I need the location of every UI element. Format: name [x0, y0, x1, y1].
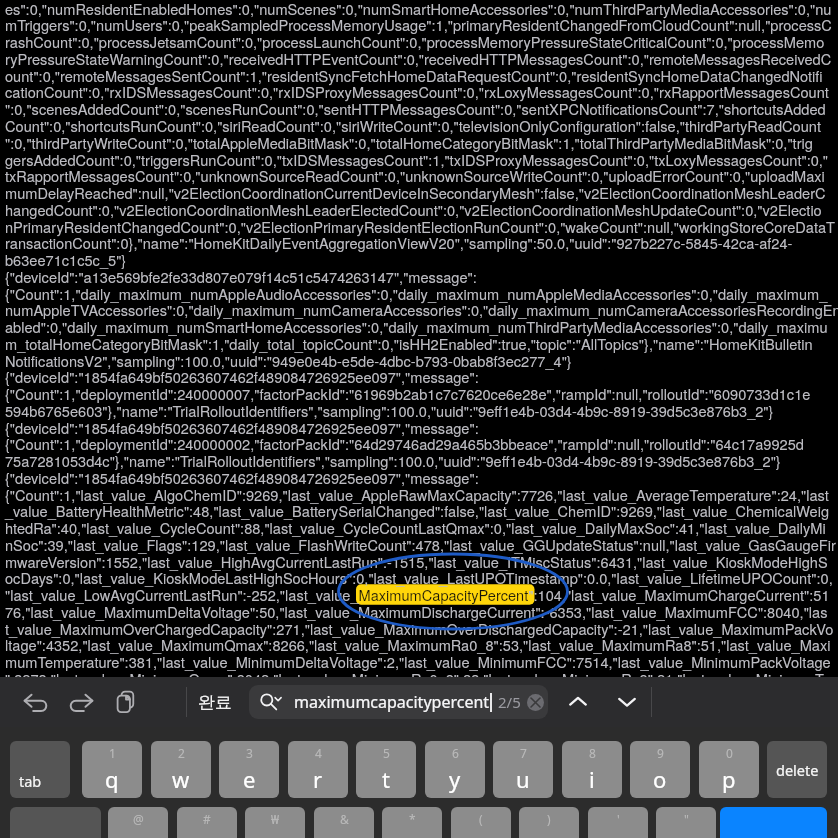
button[interactable]: Previous match: [559, 683, 597, 721]
staticText: ryPressureStateWarningCount":0,"received…: [5, 48, 832, 69]
button[interactable]: 6: [425, 741, 485, 798]
button[interactable]: ₩: [245, 807, 305, 838]
staticText: t: [382, 764, 390, 794]
staticText: e: [243, 764, 256, 794]
staticText: u: [516, 764, 530, 794]
staticText: 2/5: [498, 692, 521, 712]
staticText: 2: [178, 745, 185, 761]
staticText: 6: [452, 745, 459, 761]
button[interactable]: Redo: [62, 683, 100, 721]
staticText: *: [409, 811, 416, 827]
staticText: gersAddedCount":0,"triggersRunCount":0,"…: [5, 149, 829, 170]
staticText: b63ee71c1c5c_5"}: [5, 249, 127, 270]
staticText: 1: [109, 745, 116, 761]
button[interactable]: delete: [767, 741, 827, 798]
staticText: m_totalHomeCategoryBitMask":1,"daily_tot…: [5, 333, 813, 354]
staticText: 9: [657, 745, 664, 761]
button[interactable]: 9: [630, 741, 690, 798]
button[interactable]: Next match: [608, 683, 646, 721]
staticText: 0: [726, 745, 733, 761]
staticText: maximumcapacitypercent: [294, 691, 490, 713]
staticText: {"deviceId":"1854fa649bf50263607462f4890…: [5, 366, 479, 387]
staticText: ): [547, 811, 551, 827]
staticText: mumTemperature":381,"last_value_MinimumD…: [5, 651, 831, 672]
staticText: 4: [315, 745, 322, 761]
button[interactable]: 8: [562, 741, 622, 798]
staticText: ":0,"scenesAddedCount":0,"scenesRunCount…: [5, 98, 826, 119]
staticText: delete: [776, 760, 819, 780]
staticText: {"Count":1,"deploymentId":240000007,"fac…: [5, 383, 811, 404]
staticText: o: [653, 764, 667, 794]
staticText: (: [479, 811, 483, 827]
staticText: _value_BatteryHealthMetric":48,"last_val…: [5, 500, 830, 521]
staticText: nSoc":39,"last_value_Flags":129,"last_va…: [5, 534, 836, 555]
button[interactable]: ": [656, 807, 716, 838]
button[interactable]: 7: [493, 741, 553, 798]
staticText: mTriggers":0,"numUsers":0,"peakSampledPr…: [5, 14, 832, 35]
staticText: {"Count":1,"daily_maximum_numAppleAudioA…: [5, 283, 828, 304]
button[interactable]: #: [177, 807, 237, 838]
button[interactable]: *: [382, 807, 442, 838]
button[interactable]: Key: [720, 807, 827, 838]
staticText: p: [722, 764, 736, 794]
staticText: ₩: [271, 811, 280, 827]
staticText: ":0,"thirdPartyWriteCount":0,"totalApple…: [5, 132, 813, 153]
staticText: {"Count":1,"deploymentId":240000002,"fac…: [5, 433, 804, 454]
staticText: 8: [589, 745, 596, 761]
staticText: {"deviceId":"1854fa649bf50263607462f4890…: [5, 467, 479, 488]
button[interactable]: 4: [288, 741, 348, 798]
button[interactable]: Paste: [107, 683, 145, 721]
button[interactable]: 2: [151, 741, 211, 798]
staticText: "last_value_LowAvgCurrentLastRun":-252,"…: [5, 584, 830, 605]
button[interactable]: ): [519, 807, 579, 838]
button[interactable]: 1: [82, 741, 142, 798]
staticText: abled":0,"daily_maximum_numSmartHomeAcce…: [5, 316, 828, 337]
staticText: hangedCount":0,"v2ElectionCoordinationMe…: [5, 199, 822, 220]
staticText: htedRa":40,"last_value_CycleCount":88,"l…: [5, 517, 826, 538]
button[interactable]: Undo: [17, 683, 55, 721]
button[interactable]: (: [451, 807, 511, 838]
staticText: Count":0,"shortcutsRunCount":0,"siriRead…: [5, 115, 821, 136]
button[interactable]: @: [108, 807, 168, 838]
button[interactable]: Clear search: [527, 694, 544, 711]
button[interactable]: 0: [699, 741, 759, 798]
staticText: cationCount":0,"rxIDSMessagesCount":0,"r…: [5, 81, 829, 102]
staticText: rashCount":0,"processJetsamCount":0,"pro…: [5, 31, 825, 52]
button[interactable]: 3: [219, 741, 279, 798]
staticText: r: [313, 764, 323, 794]
staticText: {"deviceId":"1854fa649bf50263607462f4890…: [5, 417, 479, 438]
button[interactable]: &: [314, 807, 374, 838]
staticText: #: [203, 811, 211, 827]
staticText: i: [589, 764, 595, 794]
staticText: {"Count":1,"last_value_AlgoChemID":9269,…: [5, 484, 829, 505]
staticText: ': [617, 811, 620, 827]
staticText: ocDays":0,"last_value_KioskModeLastHighS…: [5, 567, 833, 588]
staticText: ltage":4352,"last_value_MaximumQmax":826…: [5, 634, 831, 655]
staticText: t_value_MaximumOverChargedCapacity":271,…: [5, 618, 834, 639]
staticText: ":3278,"last_value_MinimumQmax":8042,"la…: [5, 668, 831, 689]
staticText: @: [133, 811, 144, 827]
staticText: q: [105, 764, 119, 794]
staticText: 3: [246, 745, 253, 761]
button[interactable]: ': [588, 807, 648, 838]
button[interactable]: 완료: [194, 677, 236, 727]
staticText: ": [684, 811, 689, 827]
staticText: NotificationsV2","sampling":100.0,"uuid"…: [5, 350, 572, 371]
button[interactable]: maximumcapacitypercent: [249, 685, 548, 719]
staticText: 완료: [198, 692, 232, 713]
staticText: tab: [19, 771, 42, 791]
staticText: 7: [520, 745, 527, 761]
staticText: mwareVersion":1552,"last_value_HighAvgCu…: [5, 551, 828, 572]
staticText: txRapportMessagesCount":0,"unknownSource…: [5, 165, 825, 186]
staticText: &: [340, 811, 349, 827]
button[interactable]: 5: [356, 741, 416, 798]
staticText: {"deviceId":"a13e569bfe2fe33d807e079f14c…: [5, 266, 477, 287]
button[interactable]: tab: [10, 741, 70, 798]
staticText: ount":0,"remoteMessagesSentCount":1,"res…: [5, 65, 823, 86]
staticText: nPrimaryResidentChangedCount":0,"v2Elect…: [5, 216, 835, 237]
